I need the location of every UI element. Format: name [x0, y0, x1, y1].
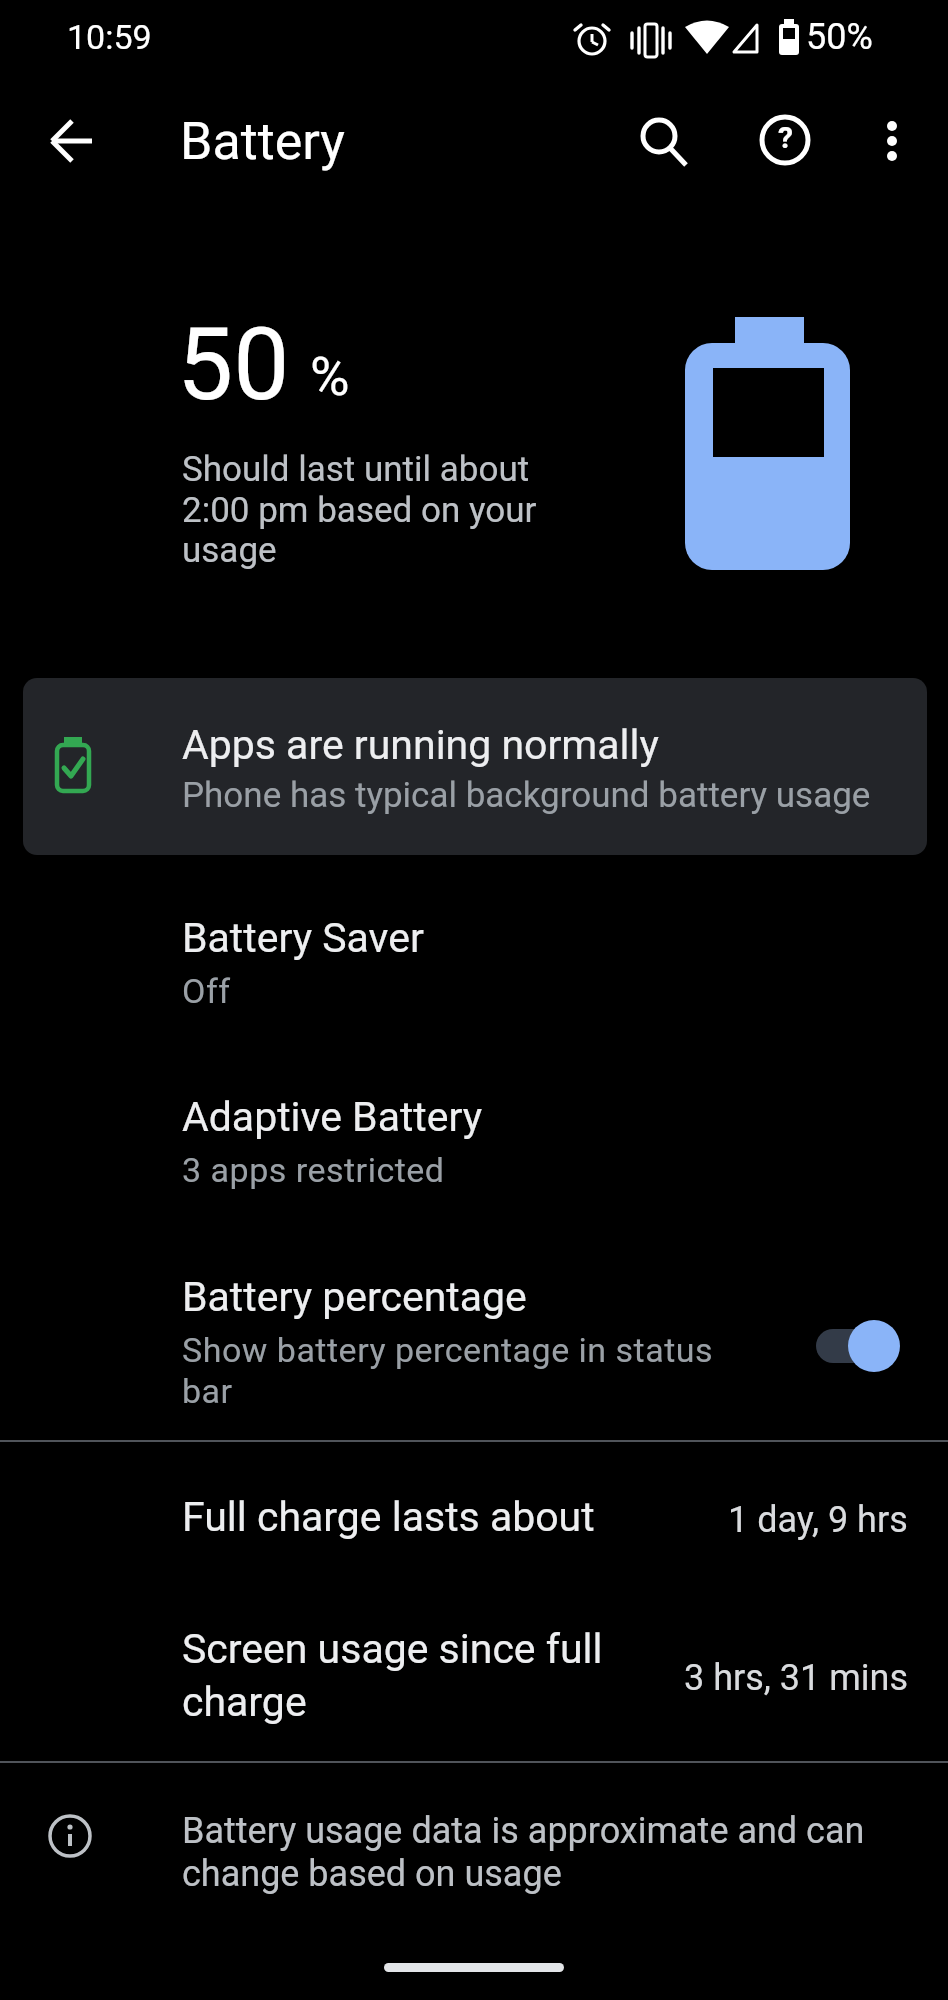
staticText: Apps are running normally [182, 721, 659, 769]
staticText: Battery Saver [182, 914, 424, 962]
button[interactable] [623, 101, 703, 181]
staticText: Phone has typical background battery usa… [182, 775, 871, 816]
staticText: Adaptive Battery [182, 1093, 483, 1141]
staticText: 3 apps restricted [182, 1150, 445, 1190]
button[interactable] [816, 1320, 900, 1372]
button[interactable]: ? [745, 101, 825, 181]
staticText: Battery usage data is approximate and ca… [182, 1810, 865, 1895]
staticText: 1 day, 9 hrs [728, 1499, 908, 1541]
staticText: 3 hrs, 31 mins [684, 1657, 908, 1699]
button[interactable]: Battery Saver [0, 914, 948, 1064]
staticText: 50 [177, 306, 290, 423]
staticText: ? [778, 120, 793, 155]
staticText: Battery [180, 111, 345, 172]
staticText: 10:59 [67, 17, 152, 57]
button[interactable] [32, 101, 112, 181]
button[interactable]: Screen usage since full charge [0, 1617, 948, 1737]
staticText: Show battery percentage in status bar [182, 1330, 714, 1412]
button[interactable]: Battery percentage [0, 1262, 948, 1427]
staticText: Battery percentage [182, 1273, 527, 1321]
staticText: Should last until about 2:00 pm based on… [182, 449, 537, 570]
staticText: Off [182, 971, 231, 1011]
staticText: % [310, 345, 350, 408]
staticText: Screen usage since full charge [182, 1625, 603, 1726]
staticText: Full charge lasts about [182, 1493, 595, 1541]
button[interactable]: Full charge lasts about [0, 1487, 948, 1557]
button[interactable]: Adaptive Battery [0, 1093, 948, 1243]
staticText: 50% [806, 16, 873, 58]
button[interactable] [856, 96, 928, 176]
button[interactable]: Apps are running normally [23, 678, 927, 855]
